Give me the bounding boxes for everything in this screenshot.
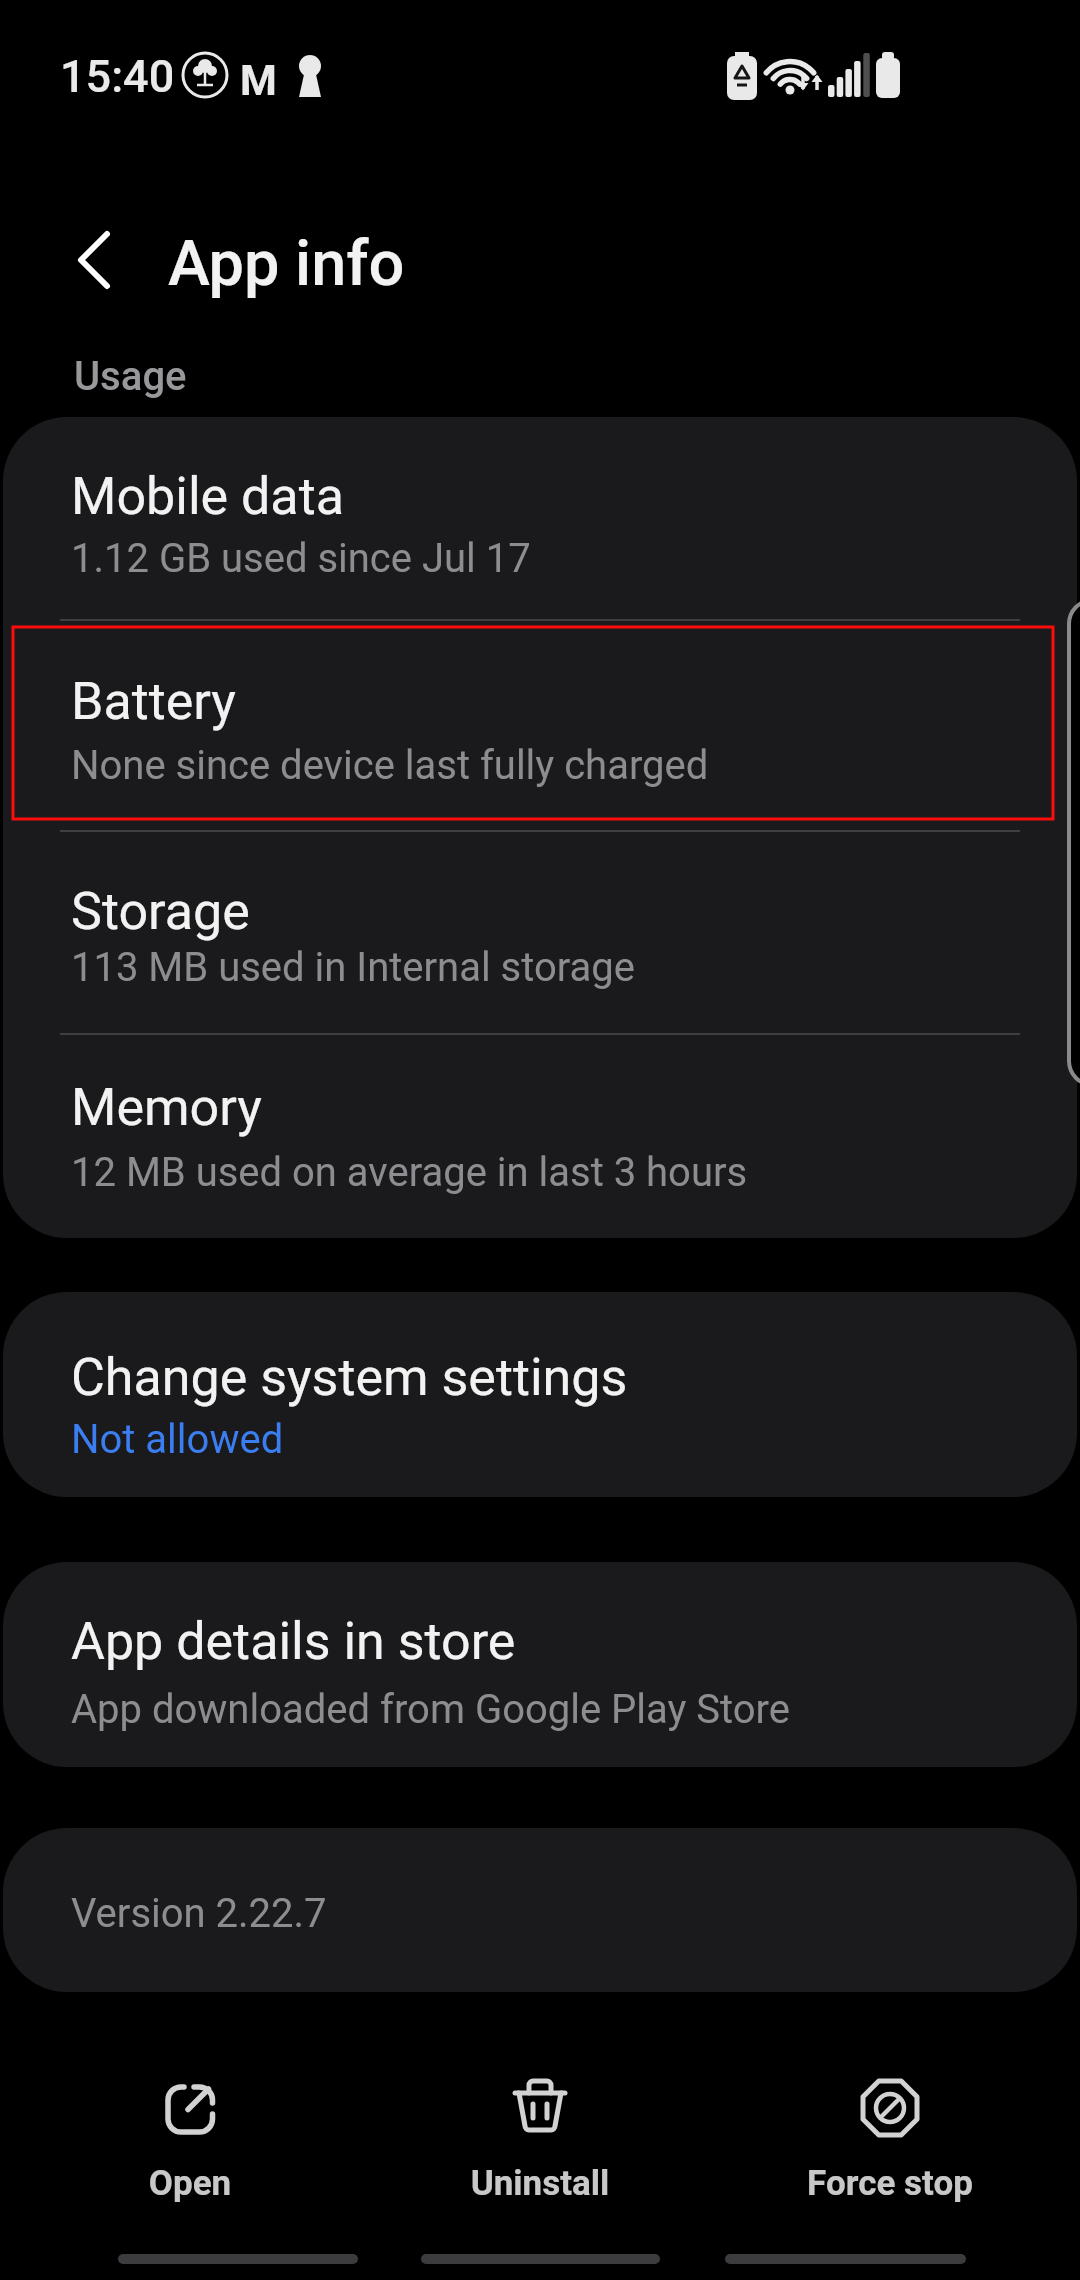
staticText: App info [168,227,405,301]
button[interactable]: Uninstall [415,2060,665,2220]
button[interactable] [3,417,1077,619]
staticText: M [240,56,277,105]
button[interactable]: Force stop [765,2060,1015,2220]
staticText: Change system settings [71,1347,628,1408]
staticText: None since device last fully charged [71,742,709,789]
staticText: 1.12 GB used since Jul 17 [71,535,531,582]
staticText: Open [65,2163,315,2213]
staticText: 12 MB used on average in last 3 hours [71,1149,748,1196]
staticText: Not allowed [71,1416,284,1463]
staticText: App details in store [71,1611,516,1672]
staticText: Usage [74,353,187,400]
button[interactable] [3,1562,1077,1767]
staticText: Memory [71,1077,262,1138]
button[interactable]: Open [65,2060,315,2220]
staticText: Storage [71,881,250,942]
staticText: Battery [71,671,236,732]
button[interactable] [50,220,135,305]
staticText: Force stop [765,2163,1015,2213]
button[interactable] [3,1034,1077,1238]
button[interactable] [3,1828,1077,1992]
button[interactable] [3,1292,1077,1497]
staticText: 113 MB used in Internal storage [71,944,635,991]
staticText: Version 2.22.7 [71,1890,327,1937]
staticText: Uninstall [415,2163,665,2213]
button[interactable] [3,831,1077,1034]
staticText: App downloaded from Google Play Store [71,1686,791,1733]
button[interactable] [3,619,1077,831]
staticText: Mobile data [71,466,344,527]
staticText: 15:40 [60,50,175,103]
